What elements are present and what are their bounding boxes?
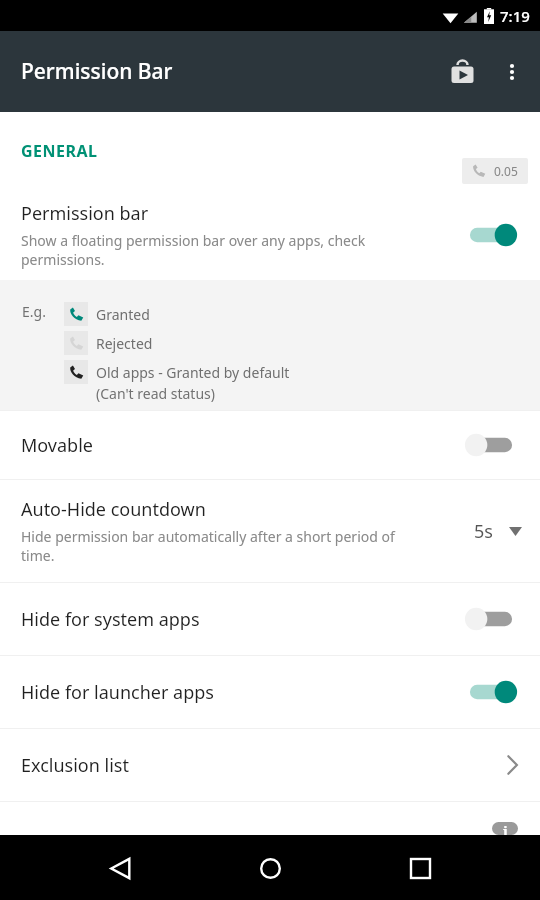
staticText: Hide for launcher apps bbox=[21, 680, 214, 705]
staticText: Hide permission bar automatically after … bbox=[21, 527, 420, 565]
staticText: Rejected bbox=[96, 334, 153, 353]
button[interactable]: Auto-Hide countdown bbox=[0, 480, 540, 582]
staticText: Movable bbox=[21, 433, 93, 458]
button[interactable]: Hide for system apps bbox=[0, 583, 540, 655]
staticText: 7:19 bbox=[500, 6, 530, 26]
button[interactable]: Home bbox=[240, 838, 300, 898]
staticText: 5s bbox=[474, 519, 493, 544]
button[interactable]: More options bbox=[488, 48, 536, 96]
staticText: Granted bbox=[96, 305, 150, 324]
button[interactable]: Movable bbox=[0, 411, 540, 479]
button[interactable]: Attention bbox=[0, 802, 540, 835]
button[interactable]: Exclusion list bbox=[0, 729, 540, 801]
button[interactable]: Back bbox=[90, 838, 150, 898]
button[interactable] bbox=[464, 428, 518, 462]
staticText: GENERAL bbox=[21, 140, 98, 162]
staticText: Permission Bar bbox=[21, 57, 173, 86]
button[interactable]: Play Store bbox=[436, 46, 488, 98]
button[interactable] bbox=[464, 218, 518, 252]
staticText: Auto-Hide countdown bbox=[21, 497, 206, 522]
button[interactable] bbox=[464, 675, 518, 709]
button[interactable]: Permission bar bbox=[0, 190, 540, 280]
button[interactable] bbox=[464, 602, 518, 636]
staticText: Exclusion list bbox=[21, 753, 129, 778]
other: Info bbox=[492, 822, 518, 835]
staticText: Permission bar bbox=[21, 201, 149, 226]
staticText: Show a floating permission bar over any … bbox=[21, 231, 410, 269]
staticText: E.g. bbox=[22, 302, 46, 321]
staticText: Old apps - Granted by default bbox=[96, 363, 290, 382]
staticText: Hide for system apps bbox=[21, 607, 200, 632]
staticText: 0.05 bbox=[494, 163, 518, 179]
button[interactable]: Hide for launcher apps bbox=[0, 656, 540, 728]
staticText: i bbox=[503, 822, 508, 835]
staticText: (Can't read status) bbox=[96, 384, 215, 403]
button[interactable]: Recent apps bbox=[390, 838, 450, 898]
